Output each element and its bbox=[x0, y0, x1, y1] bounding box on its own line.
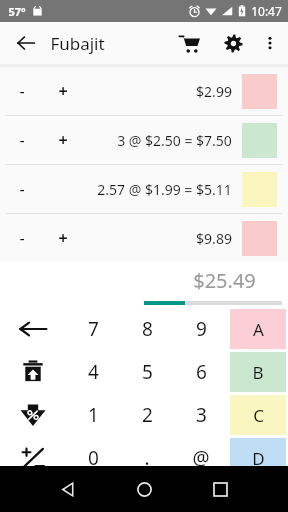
staticText: C bbox=[253, 404, 264, 427]
staticText: 8 bbox=[142, 316, 153, 342]
staticText: - bbox=[19, 80, 25, 102]
button[interactable]: Plus minus bbox=[3, 436, 63, 479]
staticText: 6 bbox=[196, 359, 207, 385]
button[interactable]: @ bbox=[174, 436, 228, 479]
staticText: $25.49 bbox=[193, 267, 256, 294]
button[interactable]: C bbox=[230, 395, 286, 435]
button[interactable]: 7 bbox=[66, 307, 120, 350]
staticText: 9 bbox=[196, 316, 207, 342]
staticText: B bbox=[252, 361, 264, 384]
button[interactable]: 9 bbox=[174, 307, 228, 350]
button[interactable]: Back bbox=[8, 25, 44, 61]
staticText: - bbox=[19, 227, 25, 249]
button[interactable]: - bbox=[0, 165, 288, 213]
button[interactable]: - bbox=[0, 116, 288, 164]
button[interactable]: 4 bbox=[66, 350, 120, 393]
staticText: 3 bbox=[196, 402, 207, 428]
staticText: + bbox=[58, 80, 68, 102]
button[interactable]: Settings bbox=[214, 24, 252, 62]
button[interactable]: 0 bbox=[66, 436, 120, 479]
staticText: 2.57 @ $1.99 = $5.11 bbox=[97, 180, 232, 199]
staticText: 0 bbox=[88, 445, 99, 471]
button[interactable]: - bbox=[0, 67, 288, 115]
button[interactable]: B bbox=[230, 352, 286, 392]
button[interactable]: - bbox=[0, 214, 288, 262]
button[interactable]: Home bbox=[126, 471, 162, 507]
staticText: A bbox=[253, 318, 264, 341]
staticText: @ bbox=[192, 445, 210, 471]
staticText: 4 bbox=[88, 359, 99, 385]
staticText: + bbox=[58, 227, 68, 249]
button[interactable]: A bbox=[230, 309, 286, 349]
button[interactable]: Back bbox=[50, 471, 86, 507]
button[interactable]: 2 bbox=[120, 393, 174, 436]
staticText: 1 bbox=[88, 402, 99, 428]
button[interactable]: More options bbox=[252, 25, 288, 61]
staticText: - bbox=[19, 178, 25, 200]
button[interactable]: Recents bbox=[202, 471, 238, 507]
button[interactable]: Backspace bbox=[3, 307, 63, 350]
button[interactable]: 3 bbox=[174, 393, 228, 436]
button[interactable]: 8 bbox=[120, 307, 174, 350]
staticText: $2.99 bbox=[196, 82, 232, 101]
staticText: 7 bbox=[88, 316, 99, 342]
staticText: D bbox=[252, 447, 265, 470]
staticText: 2 bbox=[142, 402, 153, 428]
button[interactable]: D bbox=[230, 438, 286, 478]
staticText: 3 @ $2.50 = $7.50 bbox=[117, 131, 232, 150]
button[interactable]: 1 bbox=[66, 393, 120, 436]
button[interactable]: Delete bbox=[3, 350, 63, 393]
button[interactable]: 5 bbox=[120, 350, 174, 393]
staticText: . bbox=[144, 445, 150, 471]
button[interactable]: 6 bbox=[174, 350, 228, 393]
staticText: + bbox=[58, 129, 68, 151]
button[interactable]: Percent bbox=[3, 393, 63, 436]
staticText: - bbox=[19, 129, 25, 151]
button[interactable]: . bbox=[120, 436, 174, 479]
staticText: Fubajit bbox=[50, 32, 105, 55]
staticText: 5 bbox=[142, 359, 153, 385]
staticText: 10:47 bbox=[251, 3, 282, 19]
staticText: 57° bbox=[8, 4, 26, 19]
staticText: $9.89 bbox=[196, 229, 232, 248]
button[interactable]: Cart bbox=[170, 24, 208, 62]
